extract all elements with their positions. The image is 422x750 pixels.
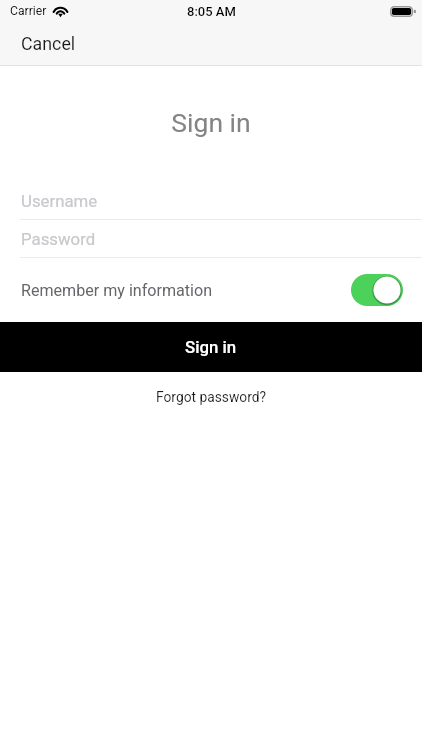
- button[interactable]: Username: [0, 182, 422, 219]
- button[interactable]: Remember my information toggle: [351, 274, 403, 306]
- button[interactable]: Cancel: [0, 27, 88, 60]
- button[interactable]: Sign in: [0, 322, 422, 372]
- button[interactable]: Password: [0, 220, 422, 257]
- staticText: Remember my information: [21, 281, 213, 300]
- staticText: Cancel: [21, 33, 76, 54]
- staticText: Carrier: [10, 4, 47, 18]
- staticText: Username: [21, 191, 98, 211]
- staticText: Sign in: [185, 337, 237, 357]
- staticText: Sign in: [0, 107, 422, 138]
- staticText: 8:05 AM: [187, 4, 236, 19]
- button[interactable]: Forgot password?: [146, 384, 277, 410]
- staticText: Forgot password?: [156, 389, 267, 405]
- staticText: Password: [21, 229, 96, 249]
